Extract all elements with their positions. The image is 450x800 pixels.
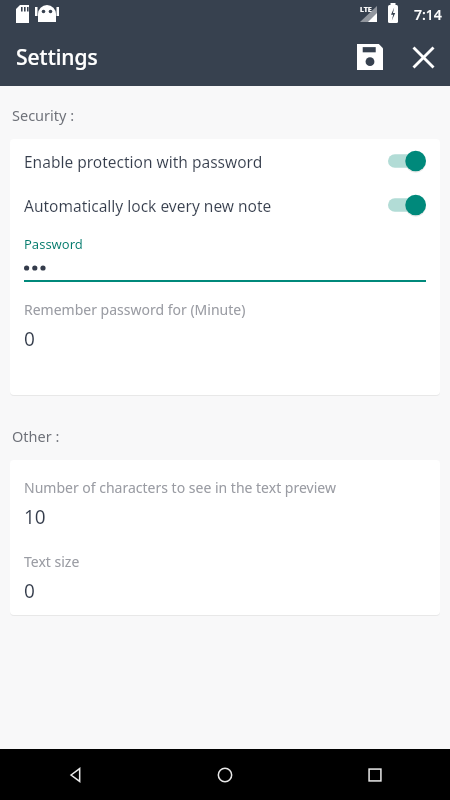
staticText: Settings — [16, 43, 98, 72]
button[interactable]: Home — [150, 749, 300, 800]
staticText: LTE — [360, 5, 372, 15]
staticText: Text size — [24, 552, 80, 571]
button[interactable]: Close — [396, 30, 450, 84]
staticText: Enable protection with password — [24, 151, 388, 172]
button[interactable]: Enable protection with password — [10, 139, 440, 183]
staticText: 0 — [24, 578, 35, 604]
staticText: 0 — [24, 326, 35, 352]
button[interactable]: Back — [0, 749, 150, 800]
staticText: Number of characters to see in the text … — [24, 478, 336, 497]
staticText: 7:14 — [414, 5, 442, 24]
button[interactable]: Save — [344, 31, 396, 83]
staticText: Automatically lock every new note — [24, 195, 388, 216]
staticText: Other : — [12, 426, 60, 446]
staticText: 10 — [24, 504, 46, 530]
staticText: Security : — [12, 105, 75, 125]
staticText: Remember password for (Minute) — [24, 300, 246, 319]
button[interactable]: Automatically lock every new note — [10, 183, 440, 227]
staticText: Password — [24, 235, 83, 253]
button[interactable]: Recent apps — [300, 749, 450, 800]
